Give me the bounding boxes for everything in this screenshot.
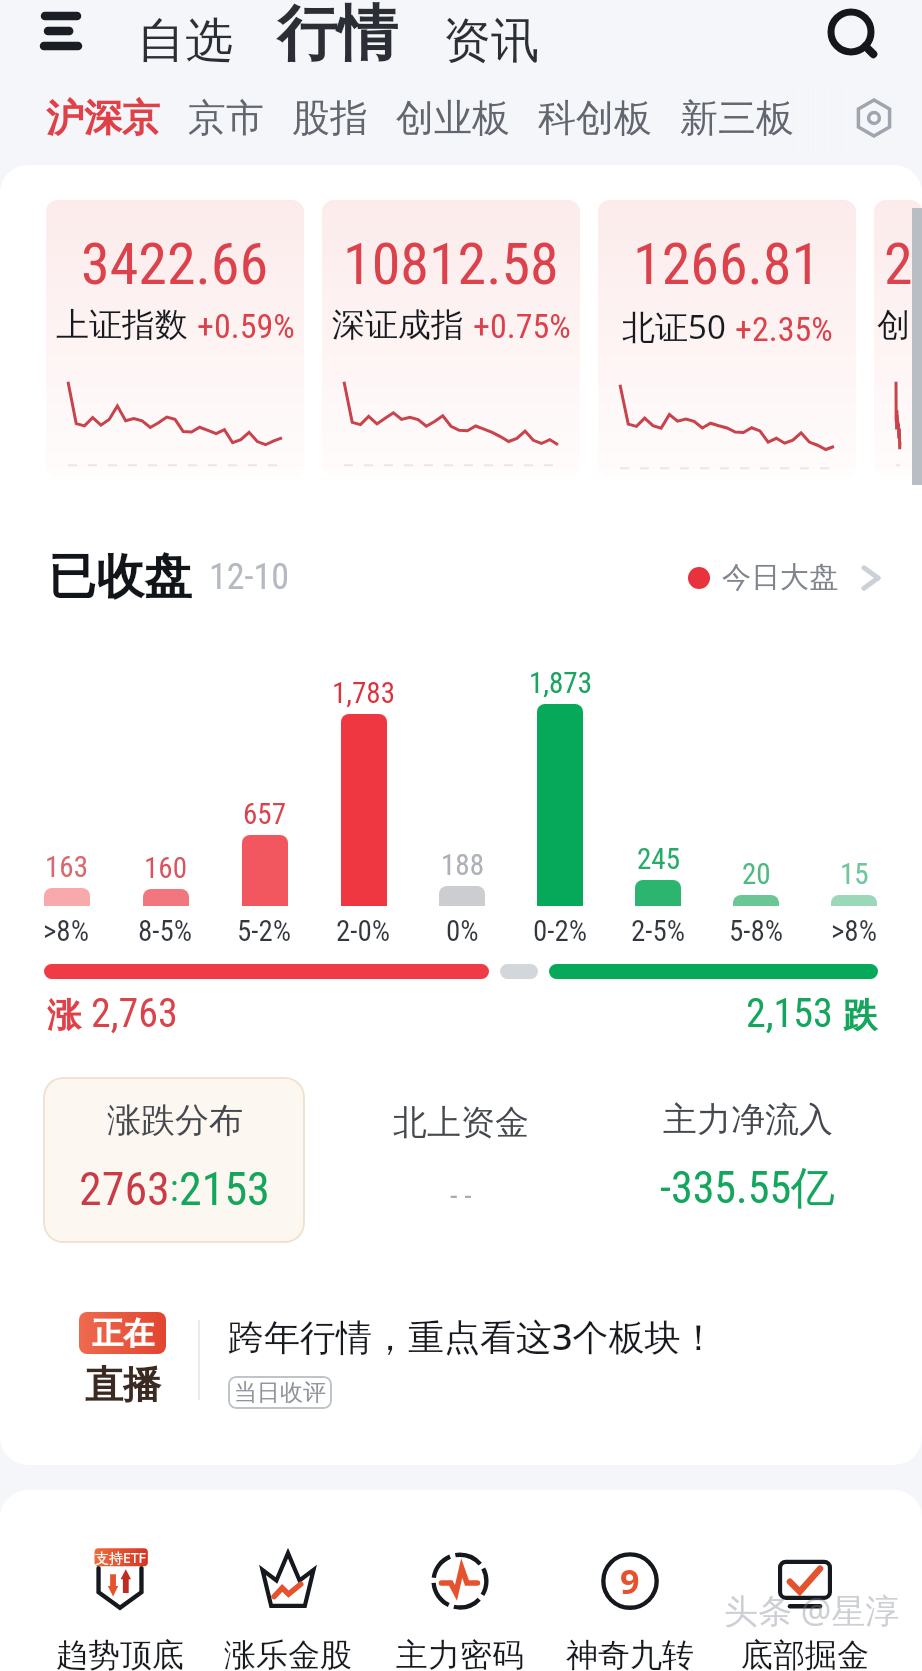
- staticText: 股指: [292, 94, 368, 142]
- staticText: 2: [884, 230, 913, 298]
- button[interactable]: 主力净流入: [616, 1077, 879, 1243]
- button[interactable]: 自选: [137, 11, 233, 72]
- staticText: 神奇九转: [566, 1635, 694, 1671]
- staticText: 新三板: [680, 94, 794, 142]
- staticText: - -: [450, 1178, 472, 1213]
- staticText: 北上资金: [393, 1101, 529, 1144]
- staticText: 2153: [179, 1162, 270, 1216]
- staticText: 今日大盘: [722, 559, 838, 596]
- staticText: 涨乐金股: [224, 1635, 352, 1671]
- staticText: 1,873: [529, 666, 592, 700]
- staticText: 沪深京: [46, 94, 160, 142]
- staticText: 163: [45, 850, 88, 884]
- staticText: 北证50: [622, 304, 726, 349]
- button[interactable]: 新三板: [680, 94, 794, 142]
- button[interactable]: 支持ETF: [50, 1547, 190, 1671]
- staticText: 188: [441, 848, 484, 882]
- button[interactable]: 3422.66: [46, 200, 304, 477]
- button[interactable]: 主力密码: [390, 1547, 530, 1671]
- button[interactable]: 涨乐金股: [218, 1547, 358, 1671]
- staticText: 245: [637, 842, 680, 876]
- staticText: 行情: [277, 0, 397, 72]
- staticText: 科创板: [538, 94, 652, 142]
- staticText: 创: [877, 304, 910, 346]
- staticText: 已收盘: [48, 547, 192, 607]
- button[interactable]: Menu: [30, 0, 92, 62]
- button[interactable]: 10812.58: [322, 200, 580, 477]
- staticText: 1,783: [332, 676, 395, 710]
- staticText: >8%: [43, 914, 90, 948]
- staticText: 上证指数: [56, 304, 188, 346]
- staticText: 正在: [92, 1314, 154, 1353]
- staticText: 20: [742, 857, 771, 891]
- staticText: 657: [243, 797, 286, 831]
- staticText: 2763: [79, 1162, 170, 1216]
- button[interactable]: 今日大盘: [688, 559, 880, 596]
- button[interactable]: 创业板: [396, 94, 510, 142]
- staticText: 0%: [446, 914, 479, 948]
- staticText: 2-0%: [336, 914, 391, 948]
- staticText: 趋势顶底: [56, 1635, 184, 1671]
- staticText: 直播: [85, 1361, 161, 1409]
- button[interactable]: 2: [874, 200, 922, 477]
- staticText: 跌: [843, 994, 877, 1037]
- staticText: 12-10: [209, 556, 290, 598]
- button[interactable]: Settings: [852, 96, 896, 140]
- staticText: 自选: [137, 11, 233, 71]
- staticText: 2-5%: [631, 914, 686, 948]
- staticText: 创业板: [396, 94, 510, 142]
- button[interactable]: 股指: [292, 94, 368, 142]
- staticText: 主力净流入: [663, 1098, 833, 1141]
- staticText: 深证成指: [332, 304, 464, 346]
- staticText: 15: [840, 857, 869, 891]
- button[interactable]: 资讯: [443, 11, 539, 72]
- button[interactable]: 北上资金: [329, 1077, 592, 1243]
- staticText: 主力密码: [396, 1635, 524, 1671]
- button[interactable]: 科创板: [538, 94, 652, 142]
- button[interactable]: 涨跌分布: [43, 1077, 305, 1243]
- staticText: 支持ETF: [95, 1548, 146, 1567]
- staticText: 2,153: [746, 990, 833, 1037]
- staticText: 3422.66: [81, 230, 269, 298]
- staticText: +0.75%: [473, 306, 571, 346]
- staticText: 1266.81: [633, 230, 821, 298]
- button[interactable]: 1266.81: [598, 200, 856, 477]
- button[interactable]: 底部掘金: [735, 1547, 875, 1671]
- staticText: 跨年行情，重点看这3个板块！: [228, 1312, 717, 1361]
- button[interactable]: 京市: [188, 94, 264, 142]
- button[interactable]: Search: [822, 4, 880, 62]
- staticText: 头条 @星淳: [724, 1587, 900, 1633]
- staticText: 京市: [188, 94, 264, 142]
- staticText: 涨: [47, 994, 81, 1037]
- staticText: 当日收评: [234, 1378, 326, 1407]
- staticText: >8%: [831, 914, 878, 948]
- button[interactable]: 行情: [277, 0, 397, 72]
- staticText: +0.59%: [197, 306, 295, 346]
- staticText: 5-2%: [237, 914, 292, 948]
- staticText: 2,763: [91, 990, 178, 1037]
- staticText: 10812.58: [343, 230, 559, 298]
- staticText: 资讯: [443, 11, 539, 71]
- staticText: +2.35%: [735, 309, 833, 349]
- button[interactable]: 沪深京: [46, 94, 160, 142]
- staticText: -335.55亿: [660, 1161, 836, 1216]
- staticText: 0-2%: [533, 914, 588, 948]
- staticText: 底部掘金: [741, 1635, 869, 1671]
- button[interactable]: 正在: [79, 1300, 876, 1420]
- staticText: 涨跌分布: [107, 1099, 243, 1142]
- button[interactable]: 9: [560, 1547, 700, 1671]
- staticText: 160: [144, 851, 187, 885]
- staticText: 5-8%: [729, 914, 784, 948]
- staticText: 8-5%: [138, 914, 193, 948]
- staticText: 9: [620, 1558, 640, 1604]
- staticText: :: [170, 1168, 179, 1210]
